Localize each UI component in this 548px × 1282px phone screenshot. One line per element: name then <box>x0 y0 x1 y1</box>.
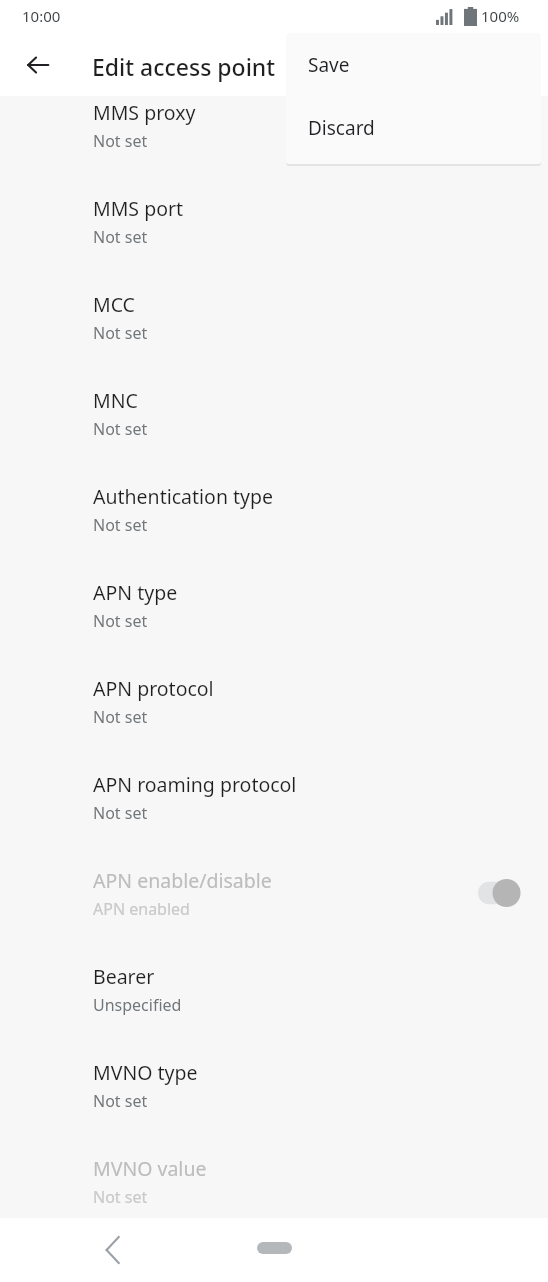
button[interactable]: Navigate up <box>14 41 62 89</box>
staticText: 100% <box>481 6 520 26</box>
staticText: MVNO type <box>93 1059 198 1086</box>
button[interactable]: MCC <box>0 269 548 365</box>
button[interactable]: MMS port <box>0 173 548 269</box>
staticText: Discard <box>308 115 375 141</box>
staticText: 10:00 <box>22 6 61 26</box>
staticText: Not set <box>93 322 148 344</box>
staticText: Bearer <box>93 963 155 990</box>
staticText: APN enable/disable <box>93 867 272 894</box>
staticText: APN roaming protocol <box>93 771 297 798</box>
staticText: APN enabled <box>93 898 190 920</box>
staticText: Unspecified <box>93 994 182 1016</box>
button[interactable]: MMS proxy <box>0 77 548 173</box>
staticText: Not set <box>93 1186 148 1208</box>
button[interactable]: Back <box>89 1226 137 1274</box>
staticText: Not set <box>93 514 148 536</box>
staticText: Not set <box>93 130 148 152</box>
staticText: Not set <box>93 418 148 440</box>
button[interactable]: Home <box>238 1230 310 1266</box>
staticText: Edit access point <box>92 51 276 82</box>
staticText: Not set <box>93 802 148 824</box>
button[interactable]: APN protocol <box>0 653 548 749</box>
staticText: Save <box>308 52 350 78</box>
button[interactable]: MVNO value <box>0 1133 548 1229</box>
staticText: MMS port <box>93 195 184 222</box>
staticText: APN protocol <box>93 675 214 702</box>
staticText: MNC <box>93 387 138 414</box>
staticText: Not set <box>93 1090 148 1112</box>
button[interactable]: APN roaming protocol <box>0 749 548 845</box>
staticText: Not set <box>93 226 148 248</box>
staticText: MMS proxy <box>93 99 196 126</box>
button[interactable]: Discard <box>286 96 541 159</box>
button[interactable]: Bearer <box>0 941 548 1037</box>
button[interactable]: APN type <box>0 557 548 653</box>
button[interactable]: MNC <box>0 365 548 461</box>
button[interactable]: APN enable/disable toggle <box>472 871 530 915</box>
button[interactable]: MVNO type <box>0 1037 548 1133</box>
staticText: APN type <box>93 579 178 606</box>
staticText: MCC <box>93 291 135 318</box>
staticText: Not set <box>93 610 148 632</box>
staticText: Authentication type <box>93 483 273 510</box>
staticText: Not set <box>93 706 148 728</box>
staticText: MVNO value <box>93 1155 207 1182</box>
button[interactable]: Authentication type <box>0 461 548 557</box>
button[interactable]: APN enable/disable <box>0 845 548 941</box>
button[interactable]: Save <box>286 33 541 96</box>
